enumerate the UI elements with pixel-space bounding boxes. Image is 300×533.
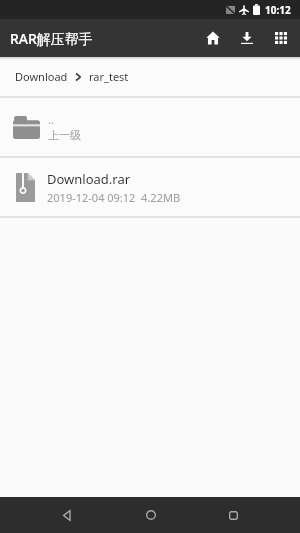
button[interactable] bbox=[196, 19, 230, 57]
button[interactable] bbox=[109, 497, 192, 533]
staticText: RAR解压帮手 bbox=[10, 29, 93, 48]
button[interactable] bbox=[25, 497, 109, 533]
staticText: 2019-12-04 09:12 4.22MB bbox=[47, 190, 181, 205]
staticText: Download.rar bbox=[47, 170, 131, 188]
button[interactable]: .. bbox=[0, 98, 300, 156]
button[interactable] bbox=[264, 19, 298, 57]
staticText: .. bbox=[48, 112, 54, 127]
staticText: rar_test bbox=[89, 69, 129, 84]
staticText: 上一级 bbox=[48, 128, 81, 142]
staticText: Download bbox=[15, 69, 68, 84]
button[interactable]: Download.rar bbox=[0, 158, 300, 216]
button[interactable]: Download bbox=[0, 57, 300, 96]
button[interactable] bbox=[192, 497, 275, 533]
staticText: 10:12 bbox=[265, 3, 291, 17]
button[interactable] bbox=[230, 19, 264, 57]
